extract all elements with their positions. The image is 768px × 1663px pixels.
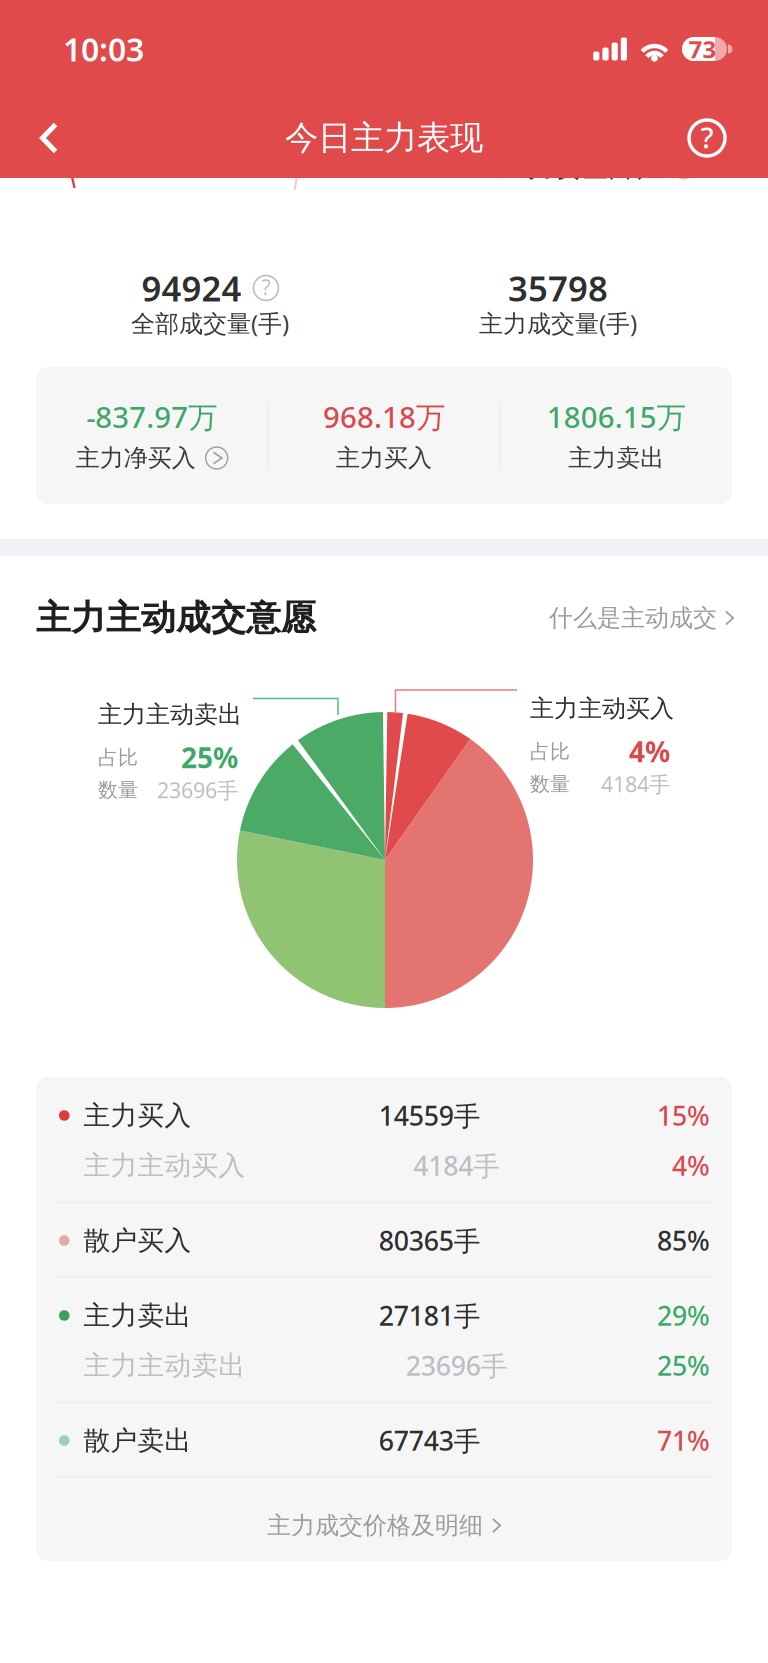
staticText: 27181手 [379, 1298, 481, 1333]
staticText: 主力卖出 [83, 1299, 191, 1332]
staticText: 数量 [530, 772, 570, 796]
staticText: 29% [657, 1298, 710, 1333]
staticText: 80365手 [379, 1223, 481, 1258]
button[interactable]: 返回 [0, 98, 82, 178]
button[interactable]: 主力成交价格及明细 [36, 1490, 732, 1560]
staticText: ? [261, 273, 270, 301]
staticText: 4% [629, 733, 670, 770]
staticText: 占比 [98, 745, 138, 770]
staticText: 35798 [508, 265, 608, 311]
button[interactable]: 什么是主动成交 [549, 595, 734, 641]
staticText: 散户买入 [83, 1224, 191, 1257]
staticText: 1806.15万 [547, 397, 686, 436]
staticText: 67743手 [379, 1423, 481, 1458]
staticText: 23696手 [157, 776, 238, 804]
staticText: 25% [181, 739, 238, 776]
staticText: 主力主动成交意愿 [36, 597, 316, 639]
staticText: 73 [688, 33, 716, 65]
staticText: 主力净买入 [76, 443, 196, 473]
staticText: ? [700, 117, 713, 156]
staticText: 主力成交量(手) [479, 307, 637, 339]
staticText: 10:03 [63, 28, 144, 70]
staticText: 数量 [98, 778, 138, 802]
staticText: 4184手 [601, 770, 670, 798]
staticText: 什么是主动成交 [549, 603, 717, 633]
staticText: 主力主动买入 [83, 1149, 245, 1182]
button[interactable]: 帮助 [663, 98, 768, 178]
staticText: 今日主力表现 [285, 117, 483, 158]
staticText: 15% [657, 1098, 710, 1133]
staticText: 主力成交价格及明细 [267, 1511, 483, 1540]
staticText: 968.18万 [323, 397, 445, 436]
staticText: 主力资金占比 [501, 151, 663, 184]
staticText: 全部成交量(手) [131, 307, 289, 339]
staticText: 主力主动卖出 [98, 700, 242, 729]
staticText: 占比 [530, 739, 570, 764]
staticText: 4% [672, 1148, 710, 1183]
staticText: 主力买入 [83, 1099, 191, 1132]
staticText: 主力买入 [336, 443, 432, 473]
staticText: 23696手 [406, 1348, 508, 1383]
staticText: 94924 [141, 265, 241, 311]
staticText: -837.97万 [86, 397, 217, 436]
staticText: 主力主动买入 [530, 694, 674, 723]
staticText: 散户卖出 [83, 1424, 191, 1457]
staticText: 4184手 [413, 1148, 500, 1183]
staticText: 85% [657, 1223, 710, 1258]
staticText: 主力卖出 [568, 443, 664, 473]
staticText: 71% [657, 1423, 710, 1458]
staticText: 25% [657, 1348, 710, 1383]
staticText: 主力主动卖出 [83, 1349, 245, 1382]
staticText: 14559手 [379, 1098, 481, 1133]
